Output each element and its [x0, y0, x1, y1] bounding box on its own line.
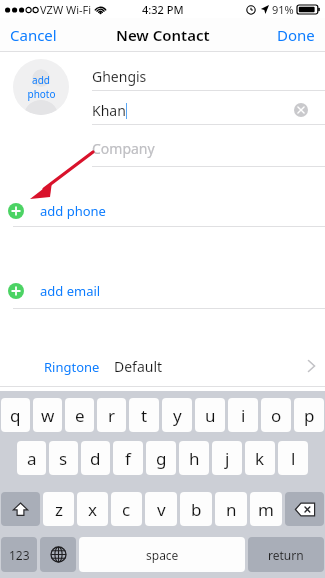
staticText: f: [125, 447, 131, 470]
staticText: add phone: [40, 202, 106, 220]
staticText: n: [226, 498, 237, 521]
button[interactable]: v: [145, 492, 177, 526]
button[interactable]: add email: [8, 279, 208, 303]
staticText: i: [241, 404, 246, 427]
button[interactable]: add phone: [8, 199, 208, 223]
staticText: Done: [277, 25, 315, 45]
staticText: c: [122, 498, 131, 521]
button[interactable]: s: [49, 441, 78, 475]
staticText: b: [191, 498, 202, 521]
staticText: j: [225, 447, 230, 470]
button[interactable]: add photo: [13, 59, 69, 115]
staticText: t: [141, 404, 148, 427]
staticText: g: [156, 447, 167, 470]
button[interactable]: Backspace: [285, 492, 324, 526]
staticText: l: [291, 447, 296, 470]
button[interactable]: d: [81, 441, 110, 475]
staticText: return: [268, 547, 304, 563]
button[interactable]: u: [195, 398, 225, 432]
button[interactable]: o: [261, 398, 291, 432]
staticText: New Contact: [116, 25, 210, 45]
staticText: y: [173, 404, 182, 427]
staticText: x: [88, 498, 97, 521]
staticText: d: [90, 447, 101, 470]
staticText: p: [304, 404, 315, 427]
button[interactable]: n: [215, 492, 247, 526]
staticText: Cancel: [10, 25, 57, 45]
staticText: Default: [114, 357, 163, 376]
button[interactable]: Switch keyboard: [40, 537, 76, 572]
button[interactable]: q: [1, 398, 30, 432]
staticText: 123: [9, 547, 30, 563]
button[interactable]: p: [294, 398, 324, 432]
staticText: m: [258, 498, 274, 521]
staticText: h: [189, 447, 200, 470]
staticText: 4:32 PM: [142, 2, 184, 17]
button[interactable]: m: [250, 492, 282, 526]
staticText: q: [10, 404, 21, 427]
staticText: o: [271, 404, 282, 427]
button[interactable]: Ringtone: [0, 352, 325, 380]
staticText: v: [157, 498, 166, 521]
button[interactable]: z: [43, 492, 74, 526]
button[interactable]: h: [179, 441, 209, 475]
button[interactable]: l: [278, 441, 308, 475]
button[interactable]: i: [228, 398, 258, 432]
button[interactable]: return: [248, 537, 324, 572]
button[interactable]: c: [111, 492, 142, 526]
staticText: w: [41, 404, 55, 427]
button[interactable]: w: [33, 398, 62, 432]
staticText: Khan: [92, 101, 126, 120]
staticText: u: [205, 404, 216, 427]
button[interactable]: space: [79, 537, 245, 572]
button[interactable]: a: [17, 441, 46, 475]
staticText: s: [59, 447, 68, 470]
staticText: Ghengis: [92, 67, 147, 86]
staticText: e: [75, 404, 85, 427]
button[interactable]: Company: [92, 134, 325, 162]
staticText: r: [108, 404, 116, 427]
button[interactable]: 123: [1, 537, 37, 572]
button[interactable]: k: [245, 441, 275, 475]
staticText: VZW Wi-Fi: [40, 2, 92, 17]
staticText: z: [55, 498, 63, 521]
staticText: a: [27, 447, 37, 470]
button[interactable]: g: [146, 441, 176, 475]
button[interactable]: b: [180, 492, 212, 526]
button[interactable]: t: [129, 398, 159, 432]
staticText: k: [255, 447, 265, 470]
button[interactable]: Khan: [92, 96, 325, 124]
staticText: Company: [92, 139, 155, 158]
staticText: 91%: [272, 2, 294, 17]
button[interactable]: y: [162, 398, 192, 432]
staticText: add email: [40, 282, 101, 300]
button[interactable]: Done: [267, 19, 325, 51]
button[interactable]: j: [212, 441, 242, 475]
button[interactable]: r: [97, 398, 126, 432]
staticText: Ringtone: [44, 358, 100, 376]
staticText: photo: [27, 87, 56, 101]
button[interactable]: f: [113, 441, 143, 475]
button[interactable]: Cancel: [0, 19, 67, 51]
staticText: space: [146, 547, 179, 563]
button[interactable]: x: [77, 492, 108, 526]
button[interactable]: e: [65, 398, 94, 432]
button[interactable]: Ghengis: [92, 62, 325, 90]
button[interactable]: Shift: [1, 492, 40, 526]
staticText: add: [32, 73, 50, 87]
button[interactable]: Clear text: [294, 103, 308, 117]
